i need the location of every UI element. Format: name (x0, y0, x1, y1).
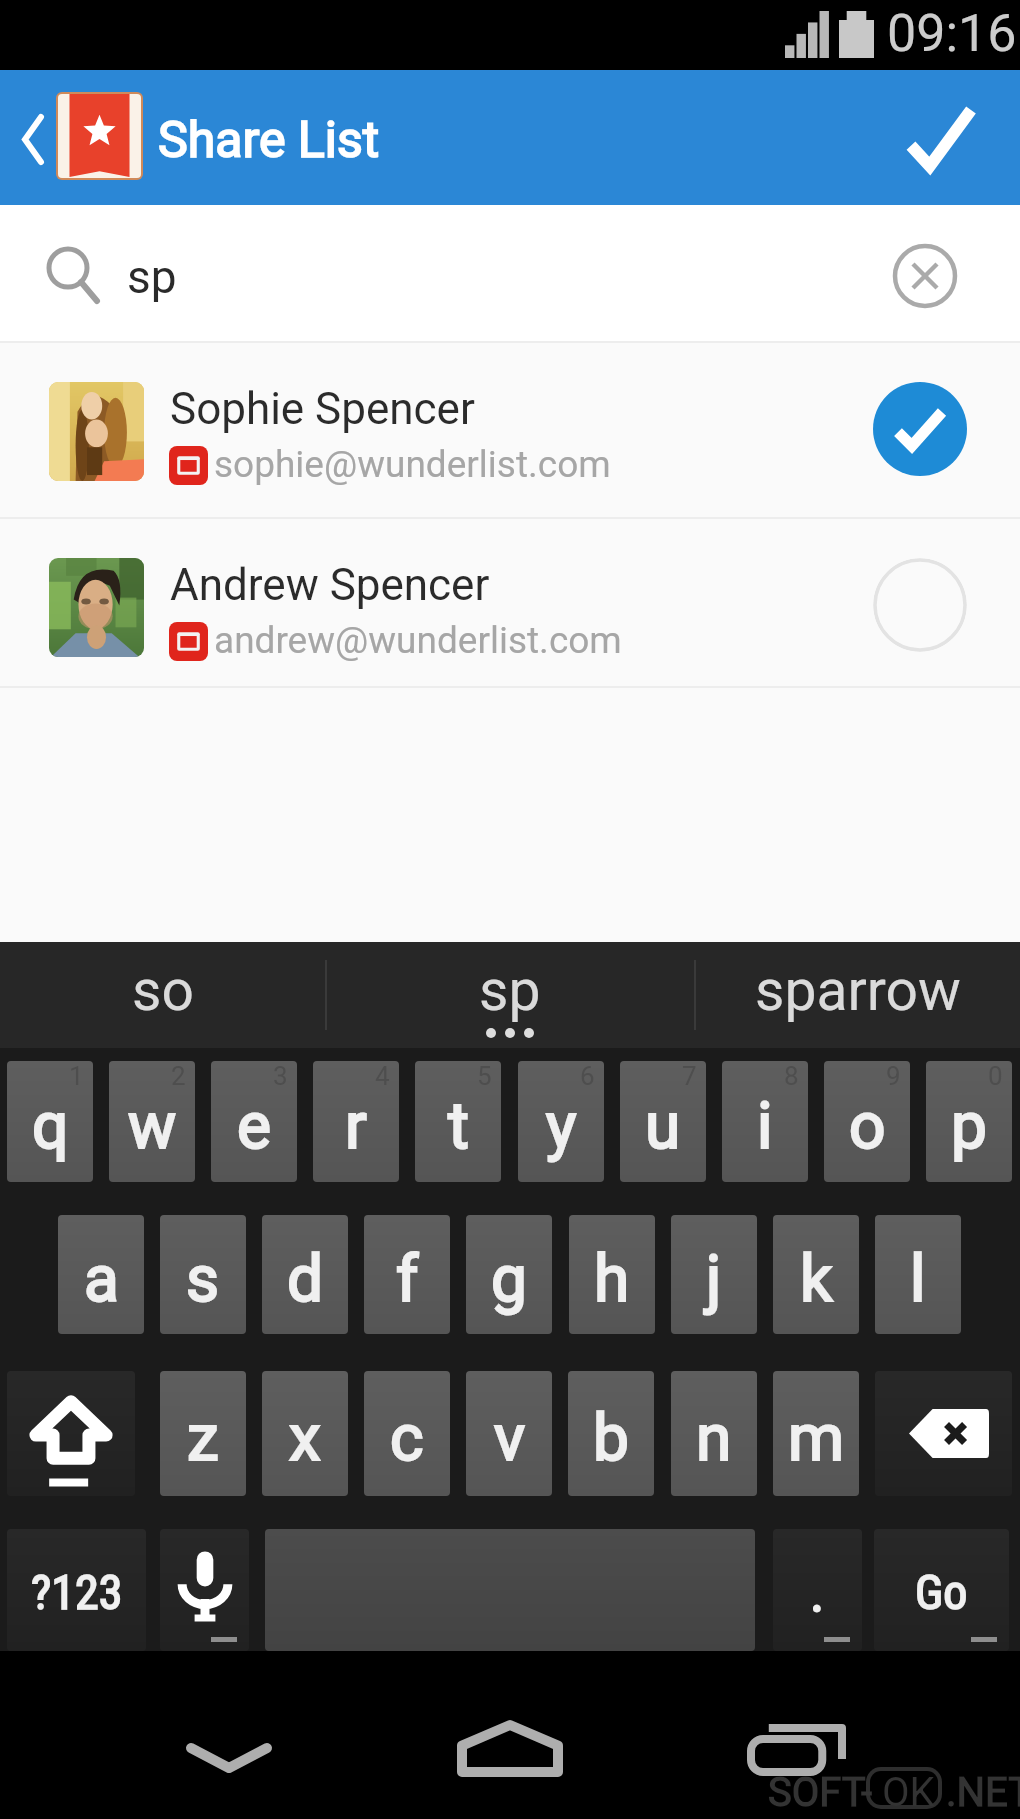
staticText: b (593, 1401, 629, 1476)
staticText: o (849, 1089, 886, 1164)
staticText: n (696, 1401, 732, 1476)
button[interactable]: v (466, 1371, 552, 1496)
staticText: p (951, 1089, 987, 1164)
button[interactable]: s (160, 1215, 246, 1334)
button[interactable]: r (313, 1061, 399, 1182)
button[interactable]: Go (874, 1529, 1009, 1651)
button[interactable]: i (722, 1061, 808, 1182)
button[interactable]: f (364, 1215, 450, 1334)
staticText: s (186, 1242, 220, 1317)
staticText: m (788, 1401, 845, 1476)
button[interactable]: g (466, 1215, 552, 1334)
staticText: u (645, 1089, 681, 1164)
staticText: 8 (784, 1061, 799, 1091)
button[interactable]: Back (129, 1651, 329, 1819)
button[interactable]: Selected Sophie Spencer (873, 382, 967, 476)
staticText: 0 (988, 1061, 1003, 1091)
staticText: t (448, 1089, 469, 1164)
button[interactable]: u (620, 1061, 706, 1182)
staticText: c (390, 1401, 424, 1476)
button[interactable]: Voice input (160, 1529, 249, 1651)
button[interactable]: c (364, 1371, 450, 1496)
staticText: l (910, 1242, 926, 1317)
staticText: x (289, 1401, 321, 1476)
staticText: d (287, 1242, 324, 1317)
button[interactable]: w (109, 1061, 195, 1182)
staticText: r (345, 1089, 367, 1164)
button[interactable]: y (518, 1061, 604, 1182)
staticText: g (491, 1242, 527, 1317)
staticText: Sophie Spencer (170, 383, 475, 435)
button[interactable]: sp (327, 942, 692, 1048)
staticText: ?123 (31, 1564, 123, 1620)
staticText: .NET (946, 1769, 1020, 1816)
staticText: q (32, 1089, 69, 1164)
button[interactable]: h (569, 1215, 655, 1334)
button[interactable]: a (58, 1215, 144, 1334)
button[interactable]: t (415, 1061, 501, 1182)
button[interactable]: Done (870, 70, 1020, 205)
staticText: 6 (580, 1061, 595, 1091)
button[interactable]: l (875, 1215, 961, 1334)
staticText: a (84, 1242, 119, 1317)
button[interactable]: m (773, 1371, 859, 1496)
staticText: 7 (682, 1061, 697, 1091)
staticText: y (546, 1089, 577, 1164)
staticText: v (494, 1401, 525, 1476)
button[interactable]: . (773, 1529, 862, 1651)
button[interactable]: Andrew Spencer (0, 519, 1020, 693)
button[interactable]: n (671, 1371, 757, 1496)
staticText: e (237, 1089, 271, 1164)
staticText: 9 (886, 1061, 901, 1091)
staticText: so (132, 957, 194, 1024)
button[interactable]: Recent apps (700, 1651, 900, 1819)
button[interactable]: p (926, 1061, 1012, 1182)
staticText: w (128, 1089, 177, 1164)
staticText: Andrew Spencer (170, 559, 490, 611)
staticText: 09:16 (887, 3, 1017, 64)
staticText: sp (479, 957, 541, 1024)
button[interactable]: sparrow (696, 942, 1020, 1048)
button[interactable]: ?123 (7, 1529, 146, 1651)
staticText: OK (882, 1769, 935, 1816)
button[interactable]: Back (0, 70, 56, 205)
staticText: sparrow (755, 957, 961, 1024)
button[interactable]: Delete (875, 1371, 1012, 1496)
staticText: . (810, 1561, 825, 1624)
button[interactable]: so (0, 942, 325, 1048)
button[interactable]: j (671, 1215, 757, 1334)
button[interactable]: q (7, 1061, 93, 1182)
button[interactable]: z (160, 1371, 246, 1496)
staticText: f (396, 1242, 419, 1317)
button[interactable]: Sophie Spencer (0, 343, 1020, 517)
staticText: Go (915, 1564, 968, 1620)
staticText: 4 (375, 1061, 390, 1091)
staticText: 3 (273, 1061, 288, 1091)
button[interactable]: Home (410, 1651, 610, 1819)
button[interactable]: o (824, 1061, 910, 1182)
button[interactable]: d (262, 1215, 348, 1334)
button[interactable]: b (568, 1371, 654, 1496)
staticText: 5 (477, 1061, 492, 1091)
staticText: sp (127, 250, 177, 304)
staticText: j (706, 1242, 722, 1317)
button[interactable]: Shift (7, 1371, 135, 1496)
staticText: z (187, 1401, 219, 1476)
staticText: h (594, 1242, 630, 1317)
staticText: sophie@wunderlist.com (214, 443, 611, 486)
staticText: k (800, 1242, 833, 1317)
staticText: 2 (171, 1061, 186, 1091)
button[interactable]: Clear search (876, 227, 974, 325)
staticText: 1 (69, 1061, 84, 1091)
button[interactable]: x (262, 1371, 348, 1496)
staticText: i (757, 1089, 773, 1164)
staticText: SOFT- (768, 1769, 873, 1816)
staticText: andrew@wunderlist.com (214, 619, 622, 662)
button[interactable]: e (211, 1061, 297, 1182)
button[interactable]: k (773, 1215, 859, 1334)
button[interactable]: Select Andrew Spencer (873, 558, 967, 652)
staticText: Share List (158, 111, 380, 170)
